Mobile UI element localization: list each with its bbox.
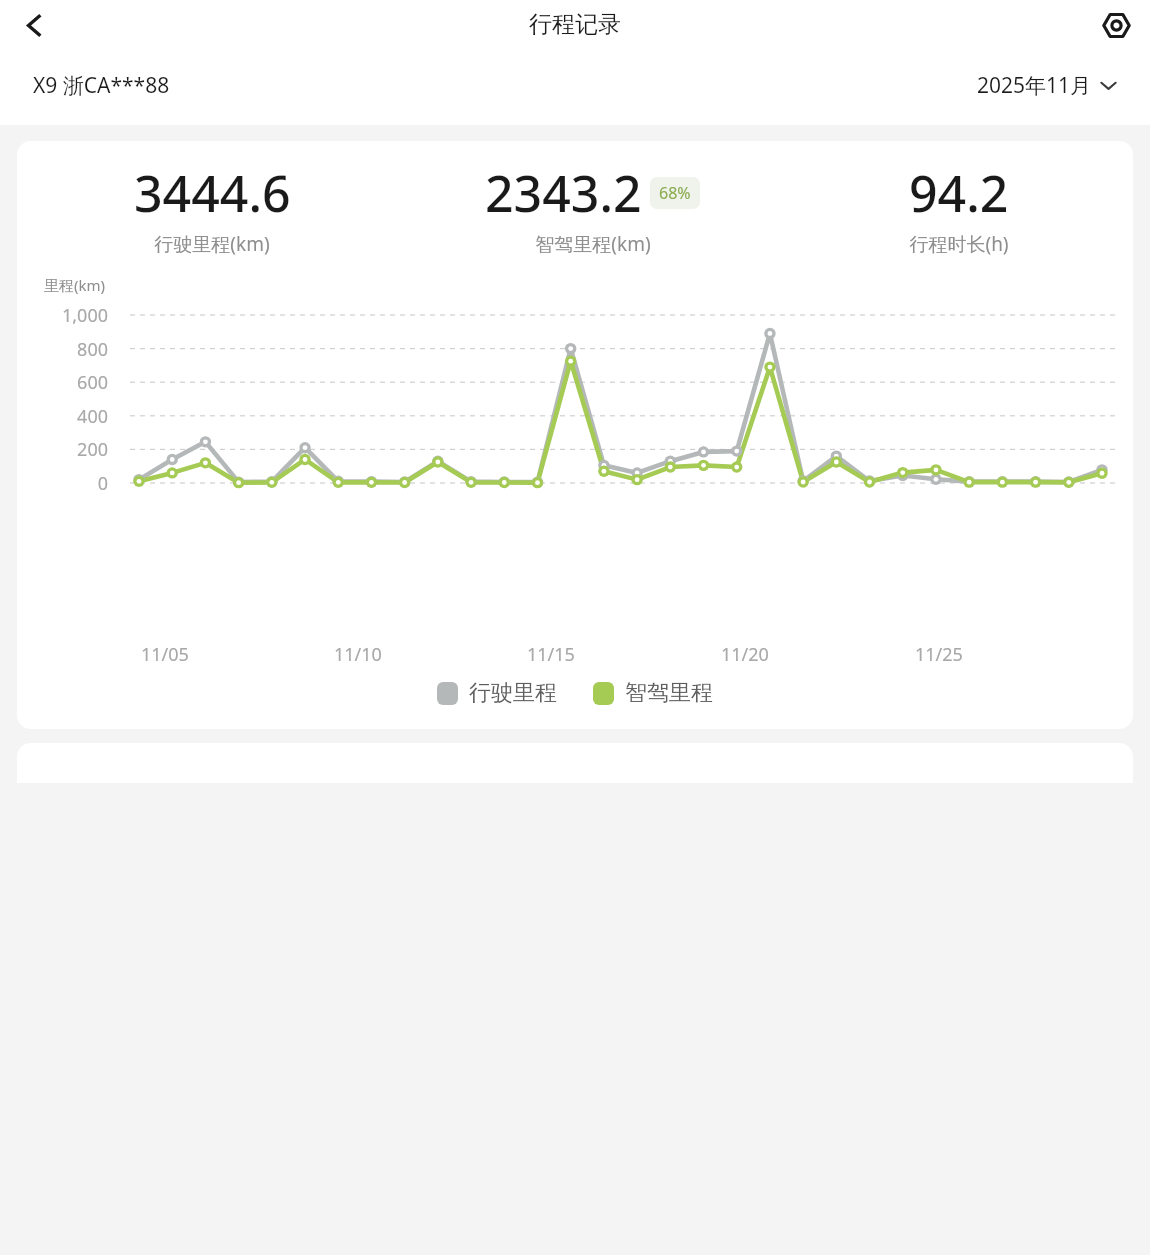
button[interactable]: 2343.2 xyxy=(389,159,796,257)
button[interactable]: 2025年11月 xyxy=(977,71,1117,100)
staticText: 11/25 xyxy=(915,642,1109,667)
staticText: 600 xyxy=(17,370,108,395)
staticText: 68% xyxy=(659,182,691,204)
staticText: X9 浙CA***88 xyxy=(33,71,170,100)
button[interactable]: 3444.6 xyxy=(35,159,389,257)
button[interactable]: 行驶里程 xyxy=(437,679,557,707)
staticText: 里程(km) xyxy=(44,275,106,295)
staticText: 2025年11月 xyxy=(977,71,1092,100)
staticText: 1,000 xyxy=(17,303,108,328)
button[interactable]: 智驾里程 xyxy=(593,679,713,707)
staticText: 智驾里程 xyxy=(625,679,713,707)
staticText: 11/05 xyxy=(141,642,334,667)
button[interactable]: Settings xyxy=(1092,1,1140,49)
staticText: 0 xyxy=(17,471,108,496)
staticText: 行程记录 xyxy=(529,10,621,39)
staticText: 2343.2 xyxy=(485,159,642,227)
staticText: 200 xyxy=(17,437,108,462)
staticText: 行驶里程(km) xyxy=(154,231,270,257)
staticText: 智驾里程(km) xyxy=(535,231,651,257)
button[interactable]: X9 浙CA***88 xyxy=(33,71,170,100)
staticText: 3444.6 xyxy=(134,159,291,227)
button[interactable]: 94.2 xyxy=(796,159,1121,257)
button[interactable]: Back xyxy=(10,1,58,49)
staticText: 400 xyxy=(17,404,108,429)
staticText: 11/10 xyxy=(334,642,527,667)
staticText: 11/20 xyxy=(721,642,915,667)
staticText: 800 xyxy=(17,337,108,362)
staticText: 94.2 xyxy=(909,159,1009,227)
staticText: 行驶里程 xyxy=(469,679,557,707)
staticText: 行程时长(h) xyxy=(909,231,1009,257)
staticText: 11/15 xyxy=(527,642,721,667)
